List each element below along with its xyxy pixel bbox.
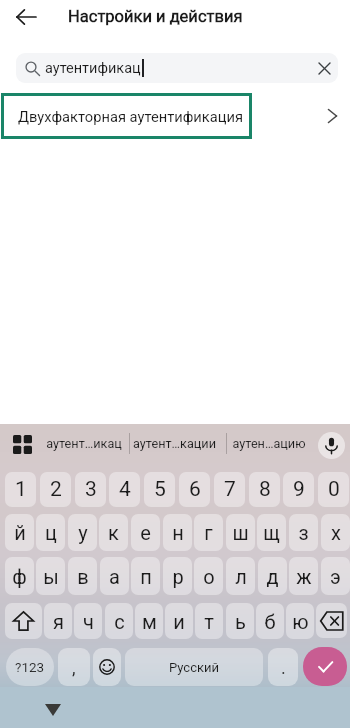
- button[interactable]: Emoji: [93, 648, 121, 686]
- button[interactable]: аутент…икац: [38, 423, 129, 463]
- staticText: д: [266, 565, 279, 588]
- staticText: 9: [293, 477, 305, 502]
- staticText: ,: [72, 657, 76, 678]
- button[interactable]: 7: [214, 472, 245, 507]
- button[interactable]: Hide keyboard: [41, 700, 65, 720]
- button[interactable]: 3: [75, 472, 106, 507]
- button[interactable]: Voice input: [318, 432, 345, 459]
- button[interactable]: аутент…кации: [130, 423, 218, 463]
- staticText: х: [331, 521, 341, 544]
- staticText: 1: [15, 477, 27, 502]
- staticText: Двухфакторная аутентификация: [18, 108, 244, 125]
- staticText: аутент…кации: [133, 436, 216, 451]
- staticText: в: [77, 565, 89, 588]
- staticText: г: [204, 521, 213, 544]
- button[interactable]: к: [99, 514, 128, 551]
- button[interactable]: 1: [5, 472, 36, 507]
- button[interactable]: у: [68, 514, 97, 551]
- button[interactable]: э: [321, 557, 350, 595]
- staticText: п: [140, 565, 152, 588]
- staticText: 2: [50, 477, 62, 502]
- button[interactable]: б: [256, 603, 284, 639]
- button[interactable]: м: [135, 603, 163, 639]
- button[interactable]: ж: [289, 557, 318, 595]
- staticText: с: [114, 610, 125, 633]
- button[interactable]: Enter: [303, 647, 347, 686]
- staticText: 4: [119, 477, 131, 502]
- button[interactable]: ч: [74, 603, 102, 639]
- button[interactable]: ы: [36, 557, 65, 595]
- button[interactable]: ь: [226, 603, 254, 639]
- button[interactable]: Back: [6, 0, 46, 33]
- staticText: м: [142, 610, 157, 633]
- button[interactable]: е: [131, 514, 160, 551]
- button[interactable]: 6: [179, 472, 210, 507]
- button[interactable]: п: [131, 557, 160, 595]
- staticText: аутен…ацию: [232, 436, 306, 451]
- button[interactable]: й: [5, 514, 34, 551]
- button[interactable]: х: [321, 514, 350, 551]
- staticText: л: [235, 565, 247, 588]
- staticText: 5: [154, 477, 166, 502]
- button[interactable]: .: [268, 648, 298, 686]
- button[interactable]: в: [68, 557, 97, 595]
- staticText: 8: [259, 477, 271, 502]
- staticText: .: [281, 657, 286, 678]
- button[interactable]: а: [100, 557, 129, 595]
- staticText: 7: [224, 477, 236, 502]
- button[interactable]: н: [163, 514, 192, 551]
- button[interactable]: Keyboard menu: [13, 435, 32, 454]
- button[interactable]: 0: [318, 472, 349, 507]
- staticText: н: [172, 521, 184, 544]
- staticText: и: [173, 610, 185, 633]
- staticText: р: [172, 565, 184, 588]
- staticText: аутентификац: [45, 60, 141, 77]
- button[interactable]: аутен…ацию: [228, 423, 309, 463]
- staticText: ч: [83, 610, 94, 633]
- button[interactable]: и: [165, 603, 193, 639]
- staticText: т: [204, 610, 214, 633]
- button[interactable]: ,: [58, 648, 90, 686]
- button[interactable]: ю: [286, 603, 314, 639]
- button[interactable]: т: [195, 603, 223, 639]
- staticText: ш: [232, 521, 249, 544]
- staticText: к: [108, 521, 119, 544]
- button[interactable]: щ: [257, 514, 286, 551]
- staticText: ж: [296, 565, 312, 588]
- staticText: з: [298, 521, 309, 544]
- button[interactable]: Clear search: [310, 53, 338, 83]
- staticText: ф: [12, 565, 27, 588]
- button[interactable]: я: [44, 603, 72, 639]
- button[interactable]: о: [194, 557, 223, 595]
- staticText: я: [53, 610, 64, 633]
- staticText: щ: [263, 521, 280, 544]
- button[interactable]: ш: [226, 514, 255, 551]
- button[interactable]: з: [289, 514, 318, 551]
- button[interactable]: г: [194, 514, 223, 551]
- button[interactable]: Shift: [5, 603, 42, 639]
- button[interactable]: д: [258, 557, 287, 595]
- button[interactable]: 5: [144, 472, 175, 507]
- button[interactable]: ц: [36, 514, 65, 551]
- button[interactable]: 4: [109, 472, 140, 507]
- button[interactable]: 8: [249, 472, 280, 507]
- staticText: у: [78, 521, 88, 544]
- button[interactable]: Русский: [125, 648, 263, 686]
- button[interactable]: р: [163, 557, 192, 595]
- button[interactable]: ?123: [6, 648, 54, 686]
- staticText: Русский: [169, 660, 220, 675]
- staticText: 3: [85, 477, 97, 502]
- staticText: б: [264, 610, 276, 633]
- button[interactable]: ф: [5, 557, 34, 595]
- button[interactable]: л: [226, 557, 255, 595]
- button[interactable]: 9: [283, 472, 314, 507]
- button[interactable]: аутентификац: [16, 53, 338, 83]
- button[interactable]: 2: [40, 472, 71, 507]
- staticText: ц: [45, 521, 57, 544]
- staticText: ь: [235, 610, 246, 633]
- button[interactable]: Двухфакторная аутентификация: [0, 93, 350, 139]
- button[interactable]: с: [105, 603, 133, 639]
- staticText: е: [140, 521, 151, 544]
- staticText: й: [14, 521, 26, 544]
- button[interactable]: Backspace: [316, 603, 347, 638]
